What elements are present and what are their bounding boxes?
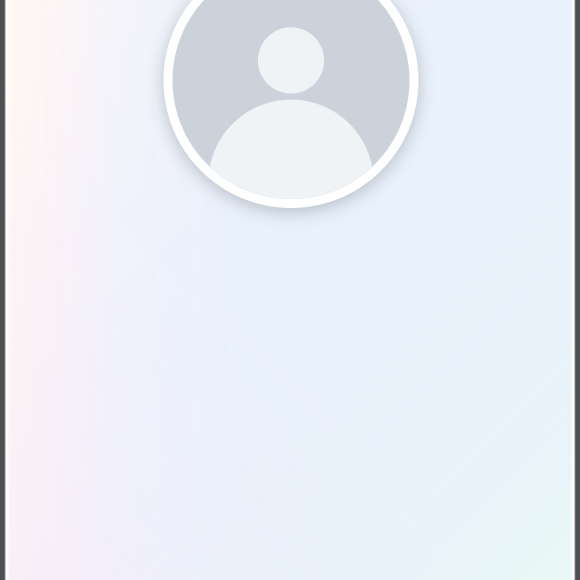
button[interactable]: Profile photo xyxy=(163,0,418,208)
